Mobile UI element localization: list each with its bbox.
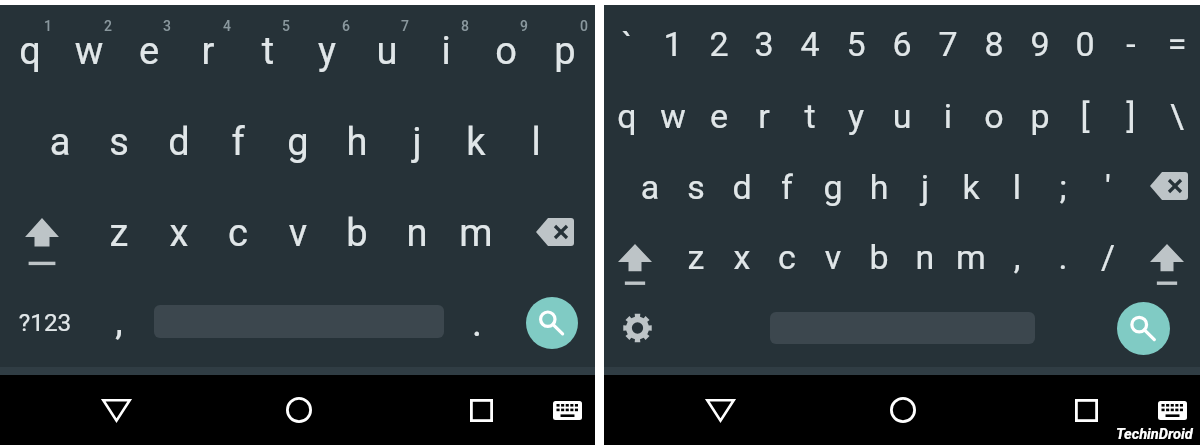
- button[interactable]: Recents: [456, 385, 506, 435]
- staticText: g: [753, 167, 913, 235]
- staticText: 6: [822, 24, 982, 92]
- button[interactable]: Search: [526, 297, 578, 349]
- staticText: i: [868, 96, 1028, 164]
- staticText: b: [799, 237, 959, 305]
- staticText: z: [616, 237, 776, 305]
- staticText: =: [1097, 24, 1200, 92]
- staticText: a: [570, 167, 730, 235]
- button[interactable]: Switch keyboard: [1147, 385, 1197, 435]
- staticText: s: [39, 120, 199, 196]
- staticText: h: [799, 167, 959, 235]
- staticText: 8: [914, 24, 1074, 92]
- staticText: m: [891, 237, 1051, 305]
- button[interactable]: Shift: [17, 210, 67, 273]
- button[interactable]: Recents: [1061, 385, 1111, 435]
- button[interactable]: Home: [878, 385, 928, 435]
- staticText: .: [397, 301, 557, 377]
- staticText: d: [662, 167, 822, 235]
- staticText: y: [247, 29, 407, 105]
- staticText: t: [730, 96, 890, 164]
- staticText: ?123: [0, 308, 125, 357]
- staticText: s: [616, 167, 776, 235]
- button[interactable]: Backspace: [533, 214, 577, 250]
- staticText: l: [937, 167, 1097, 235]
- staticText: c: [707, 237, 867, 305]
- staticText: j: [337, 120, 497, 196]
- staticText: t: [188, 29, 348, 105]
- button[interactable]: Settings: [615, 306, 659, 350]
- staticText: ,: [937, 237, 1097, 305]
- staticText: f: [158, 120, 318, 196]
- staticText: /: [1028, 237, 1188, 305]
- staticText: v: [753, 237, 913, 305]
- staticText: 4: [730, 24, 890, 92]
- staticText: ]: [1051, 96, 1200, 164]
- staticText: q: [0, 29, 110, 105]
- staticText: 7: [325, 18, 485, 46]
- staticText: 2: [639, 24, 799, 92]
- staticText: 1: [0, 18, 128, 46]
- staticText: l: [456, 120, 616, 196]
- staticText: o: [914, 96, 1074, 164]
- staticText: 4: [147, 18, 307, 46]
- button[interactable]: Back: [91, 385, 141, 435]
- staticText: 9: [444, 18, 604, 46]
- staticText: 3: [87, 18, 247, 46]
- staticText: w: [593, 96, 753, 164]
- staticText: b: [277, 211, 437, 287]
- button[interactable]: Shift: [610, 236, 660, 293]
- button[interactable]: Back: [695, 385, 745, 435]
- staticText: o: [426, 29, 586, 105]
- button[interactable]: Backspace: [1147, 168, 1191, 204]
- staticText: n: [337, 211, 497, 287]
- staticText: r: [128, 29, 288, 105]
- staticText: g: [218, 120, 378, 196]
- staticText: `: [547, 24, 707, 92]
- staticText: TechinDroid: [1116, 425, 1193, 442]
- staticText: 1: [593, 24, 753, 92]
- staticText: j: [845, 167, 1005, 235]
- staticText: u: [307, 29, 467, 105]
- staticText: e: [69, 29, 229, 105]
- staticText: 0: [504, 18, 664, 46]
- staticText: q: [547, 96, 707, 164]
- staticText: -: [1051, 24, 1200, 92]
- staticText: c: [158, 211, 318, 287]
- staticText: n: [845, 237, 1005, 305]
- staticText: k: [891, 167, 1051, 235]
- staticText: ,: [39, 299, 199, 375]
- staticText: 8: [385, 18, 545, 46]
- staticText: a: [0, 120, 140, 196]
- staticText: .: [983, 237, 1143, 305]
- staticText: z: [39, 211, 199, 287]
- staticText: d: [99, 120, 259, 196]
- staticText: ': [1028, 167, 1188, 235]
- staticText: p: [485, 29, 645, 105]
- staticText: 0: [1005, 24, 1165, 92]
- button[interactable]: Home: [274, 385, 324, 435]
- staticText: x: [662, 237, 822, 305]
- staticText: y: [776, 96, 936, 164]
- staticText: \: [1097, 96, 1200, 164]
- staticText: [: [1005, 96, 1165, 164]
- staticText: 7: [868, 24, 1028, 92]
- staticText: k: [396, 120, 556, 196]
- staticText: x: [99, 211, 259, 287]
- staticText: u: [822, 96, 982, 164]
- staticText: i: [366, 29, 526, 105]
- staticText: 6: [266, 18, 426, 46]
- staticText: f: [707, 167, 867, 235]
- button[interactable]: Switch keyboard: [542, 385, 592, 435]
- staticText: p: [960, 96, 1120, 164]
- staticText: h: [277, 120, 437, 196]
- staticText: 9: [960, 24, 1120, 92]
- staticText: e: [639, 96, 799, 164]
- staticText: r: [684, 96, 844, 164]
- button[interactable]: Search: [1117, 302, 1170, 355]
- button[interactable]: Shift: [1142, 236, 1192, 293]
- staticText: 5: [776, 24, 936, 92]
- staticText: v: [218, 211, 378, 287]
- staticText: w: [9, 29, 169, 105]
